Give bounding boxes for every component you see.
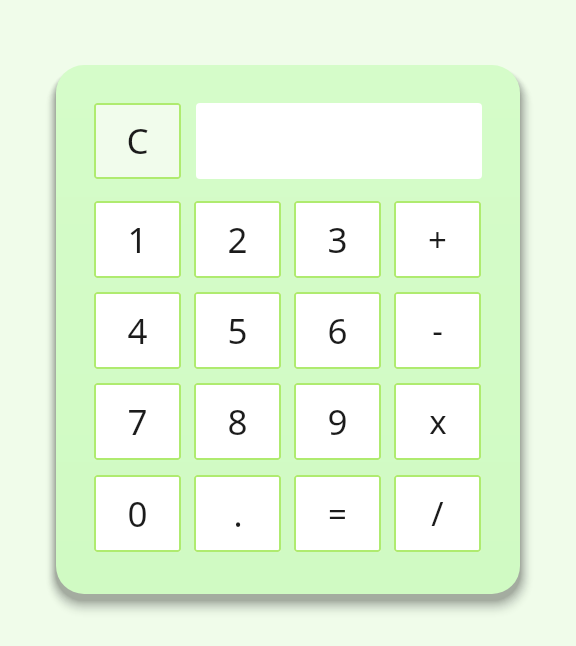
staticText: -: [432, 308, 443, 353]
button[interactable]: C: [94, 103, 181, 179]
button[interactable]: 4: [94, 292, 181, 369]
staticText: =: [328, 491, 347, 536]
button[interactable]: 9: [294, 383, 381, 460]
staticText: 9: [327, 398, 348, 446]
staticText: 0: [127, 490, 148, 538]
button[interactable]: 8: [194, 383, 281, 460]
staticText: 3: [327, 216, 348, 264]
staticText: x: [429, 399, 447, 444]
button[interactable]: =: [294, 475, 381, 552]
staticText: /: [431, 491, 444, 536]
staticText: 5: [227, 307, 248, 355]
button[interactable]: .: [194, 475, 281, 552]
button[interactable]: /: [394, 475, 481, 552]
button[interactable]: -: [394, 292, 481, 369]
staticText: 1: [127, 216, 148, 264]
staticText: C: [126, 117, 149, 165]
staticText: 8: [227, 398, 248, 446]
button[interactable]: 7: [94, 383, 181, 460]
button[interactable]: 5: [194, 292, 281, 369]
button[interactable]: x: [394, 383, 481, 460]
button[interactable]: +: [394, 201, 481, 278]
staticText: +: [428, 217, 447, 262]
staticText: 6: [327, 307, 348, 355]
button[interactable]: 1: [94, 201, 181, 278]
button[interactable]: 6: [294, 292, 381, 369]
button[interactable]: 0: [94, 475, 181, 552]
staticText: 2: [227, 216, 248, 264]
staticText: 4: [127, 307, 148, 355]
staticText: 7: [127, 398, 148, 446]
button[interactable]: 3: [294, 201, 381, 278]
staticText: .: [233, 491, 243, 537]
button[interactable]: 2: [194, 201, 281, 278]
